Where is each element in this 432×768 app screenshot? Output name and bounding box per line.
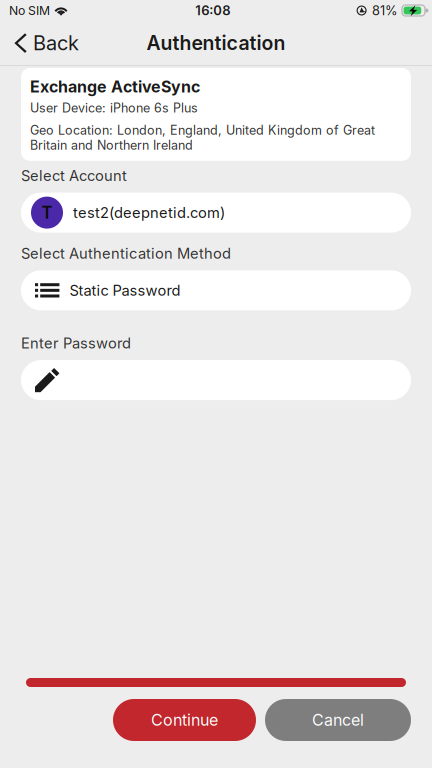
staticText: Authentication	[146, 31, 285, 55]
staticText: test2(deepnetid.com)	[73, 204, 225, 221]
staticText: Enter Password	[21, 334, 131, 352]
staticText: Continue	[151, 710, 218, 730]
staticText: 16:08	[195, 3, 230, 18]
staticText: Geo Location: London, England, United Ki…	[30, 122, 375, 138]
staticText: Back	[33, 31, 79, 55]
button[interactable]: Static Password	[0, 270, 432, 310]
staticText: No SIM	[9, 3, 50, 18]
staticText: Britain and Northern Ireland	[30, 138, 193, 153]
staticText: 81%	[372, 3, 398, 18]
button[interactable]: T	[0, 193, 432, 233]
button[interactable]: Cancel	[265, 699, 411, 741]
staticText: Cancel	[312, 710, 364, 730]
staticText: Select Account	[21, 167, 127, 185]
button[interactable]	[0, 360, 432, 400]
staticText: User Device: iPhone 6s Plus	[30, 100, 198, 116]
staticText: Select Authentication Method	[21, 245, 231, 262]
button[interactable]: Continue	[113, 699, 256, 741]
staticText: T	[41, 202, 52, 223]
staticText: Exchange ActiveSync	[30, 77, 200, 96]
button[interactable]: Back	[0, 26, 89, 60]
staticText: Static Password	[69, 281, 180, 299]
